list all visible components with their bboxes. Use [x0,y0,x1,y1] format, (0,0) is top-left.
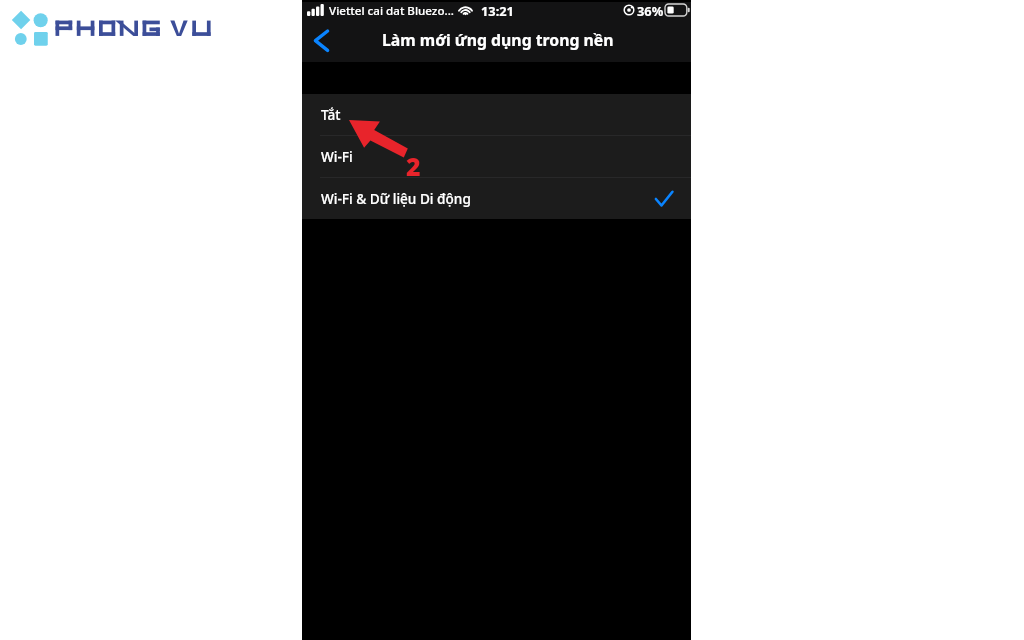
staticText: 13:21 [481,2,514,19]
button[interactable]: Wi-Fi [302,136,691,177]
button[interactable]: Phong Vu logo [8,8,218,48]
staticText: 2 [406,149,421,183]
staticText: Wi-Fi & Dữ liệu Di động [321,189,471,208]
staticText: Wi-Fi [321,147,353,166]
staticText: Viettel cai dat Bluezo... [329,3,454,19]
button[interactable]: Tắt [302,94,691,135]
button[interactable]: Back [306,25,332,59]
staticText: Làm mới ứng dụng trong nền [382,29,614,51]
staticText: 36% [637,2,664,19]
staticText: Tắt [321,105,341,124]
button[interactable]: Wi-Fi & Dữ liệu Di động [302,178,691,219]
